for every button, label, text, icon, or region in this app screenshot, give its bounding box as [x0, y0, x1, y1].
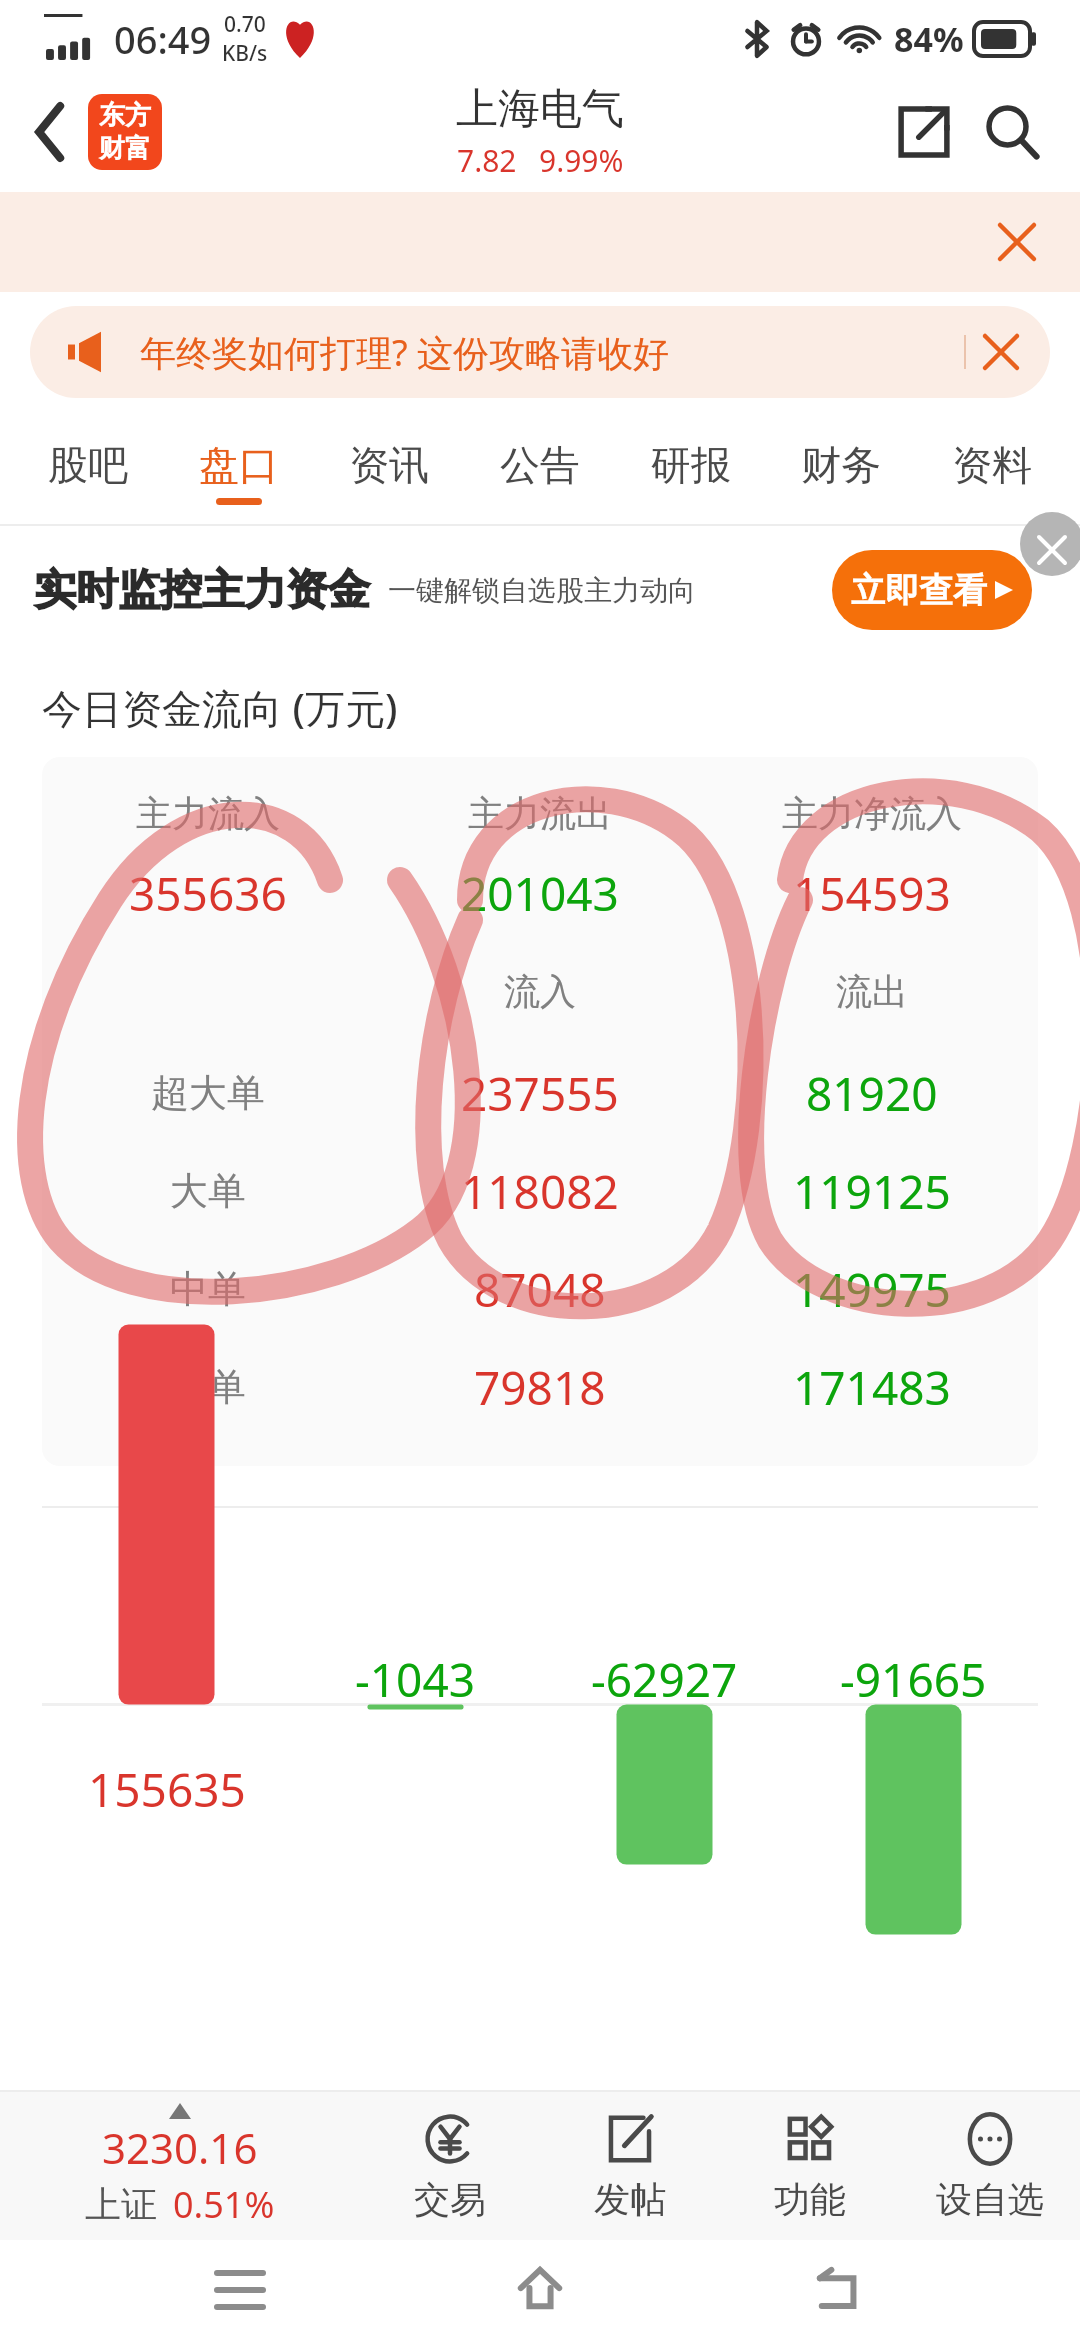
staticText: 84% — [894, 16, 964, 62]
staticText: 79818 — [474, 1356, 606, 1419]
staticText: 流入 — [504, 969, 576, 1014]
button[interactable]: 公告 — [478, 420, 602, 524]
button[interactable]: Search — [970, 90, 1054, 174]
staticText: 9.99% — [539, 140, 624, 181]
button[interactable]: 资讯 — [327, 420, 451, 524]
staticText: 118082 — [461, 1160, 619, 1223]
button[interactable]: 股吧 — [26, 420, 150, 524]
staticText: 盘口 — [199, 440, 279, 490]
button[interactable]: 财务 — [779, 420, 903, 524]
staticText: 7.82 — [457, 140, 517, 181]
staticText: KB/s — [222, 39, 268, 68]
button[interactable]: 东方财富 — [88, 94, 162, 170]
staticText: 171483 — [793, 1356, 951, 1419]
button[interactable]: 交易 — [360, 2092, 540, 2240]
staticText: 上海电气 — [456, 83, 624, 136]
staticText: 3230.16 — [102, 2119, 258, 2176]
staticText: 流出 — [836, 969, 908, 1014]
staticText: 154593 — [793, 862, 951, 925]
staticText: 公告 — [500, 440, 580, 490]
button[interactable]: 超大单 — [42, 1044, 1038, 1142]
staticText: 主力流入 — [136, 791, 280, 836]
staticText: 87048 — [474, 1258, 606, 1321]
staticText: 财富 — [99, 132, 151, 165]
staticText: 0.51% — [173, 2180, 275, 2229]
staticText: 资料 — [952, 440, 1032, 490]
staticText: 主力净流入 — [782, 791, 962, 836]
button[interactable]: 中单 — [42, 1240, 1038, 1338]
button[interactable]: Back — [14, 96, 86, 168]
staticText: -1043 — [355, 1648, 476, 1711]
staticText: 大单 — [170, 1167, 246, 1215]
staticText: 06:49 — [114, 13, 212, 65]
button[interactable]: 资料 — [930, 420, 1054, 524]
staticText: 实时监控主力资金 — [34, 564, 370, 617]
button[interactable]: Dismiss — [966, 317, 1036, 387]
button[interactable]: 功能 — [720, 2092, 900, 2240]
button[interactable]: 设自选 — [900, 2092, 1080, 2240]
staticText: 149975 — [793, 1258, 951, 1321]
staticText: 股吧 — [48, 440, 128, 490]
staticText: 237555 — [461, 1062, 619, 1125]
staticText: 今日资金流向 (万元) — [42, 680, 398, 735]
button[interactable]: 盘口 — [177, 420, 301, 524]
staticText: 小单 — [170, 1363, 246, 1411]
button[interactable]: Recents — [180, 2240, 300, 2340]
staticText: 一键解锁自选股主力动向 — [388, 573, 696, 608]
staticText: 355636 — [129, 862, 287, 925]
button[interactable]: Back — [780, 2240, 900, 2340]
staticText: -91665 — [840, 1648, 987, 1711]
button[interactable]: 年终奖如何打理? 这份攻略请收好 — [30, 306, 1050, 398]
staticText: 设自选 — [936, 2177, 1044, 2222]
staticText: 年终奖如何打理? 这份攻略请收好 — [140, 328, 669, 377]
staticText: 201043 — [461, 862, 619, 925]
staticText: 资讯 — [349, 440, 429, 490]
button[interactable]: Home — [480, 2240, 600, 2340]
button[interactable]: 实时监控主力资金 — [0, 526, 1080, 654]
staticText: 主力流出 — [468, 791, 612, 836]
staticText: 155635 — [88, 1758, 246, 1821]
button[interactable]: Share — [884, 92, 964, 172]
staticText: 发帖 — [594, 2177, 666, 2222]
staticText: 上证 — [85, 2182, 157, 2227]
staticText: 中单 — [170, 1265, 246, 1313]
button[interactable]: 发帖 — [540, 2092, 720, 2240]
staticText: 交易 — [414, 2177, 486, 2222]
staticText: -62927 — [591, 1648, 738, 1711]
staticText: 财务 — [801, 440, 881, 490]
button[interactable]: 主力流入 — [42, 757, 1038, 1466]
button[interactable]: 小单 — [42, 1338, 1038, 1436]
button[interactable]: 研报 — [629, 420, 753, 524]
staticText: 立即查看 — [851, 569, 987, 612]
staticText: 81920 — [806, 1062, 938, 1125]
staticText: 东方 — [99, 99, 151, 132]
staticText: 0.70 — [224, 10, 266, 39]
staticText: 119125 — [793, 1160, 951, 1223]
staticText: 超大单 — [151, 1069, 265, 1117]
button[interactable]: Close ad — [1020, 512, 1080, 576]
staticText: 功能 — [774, 2177, 846, 2222]
button[interactable]: 立即查看 — [832, 550, 1032, 630]
button[interactable]: 大单 — [42, 1142, 1038, 1240]
button[interactable]: 3230.16 — [0, 2103, 360, 2229]
button[interactable]: Close banner — [984, 209, 1050, 275]
staticText: 研报 — [651, 440, 731, 490]
